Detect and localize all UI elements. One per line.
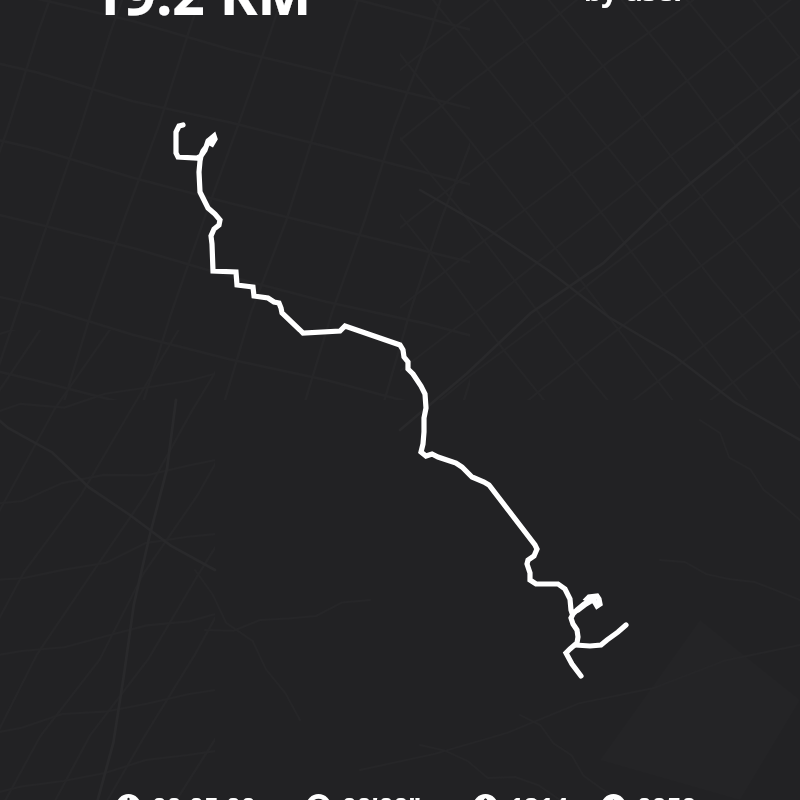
staticText: 1814 (509, 789, 569, 800)
staticText: 00:05:00 (152, 789, 256, 800)
staticText: 00'00" (342, 789, 421, 800)
button[interactable]: Ascent 1814 (473, 789, 569, 800)
button[interactable]: Elevation 0050 (601, 789, 697, 800)
other: Activity route map (0, 0, 800, 800)
button[interactable]: Pace 00'00" (306, 789, 421, 800)
button[interactable]: 19.2 KM (91, 0, 312, 32)
button[interactable]: Duration 00:05:00 (116, 789, 256, 800)
button[interactable]: by user (584, 0, 686, 9)
staticText: 0050 (637, 789, 697, 800)
